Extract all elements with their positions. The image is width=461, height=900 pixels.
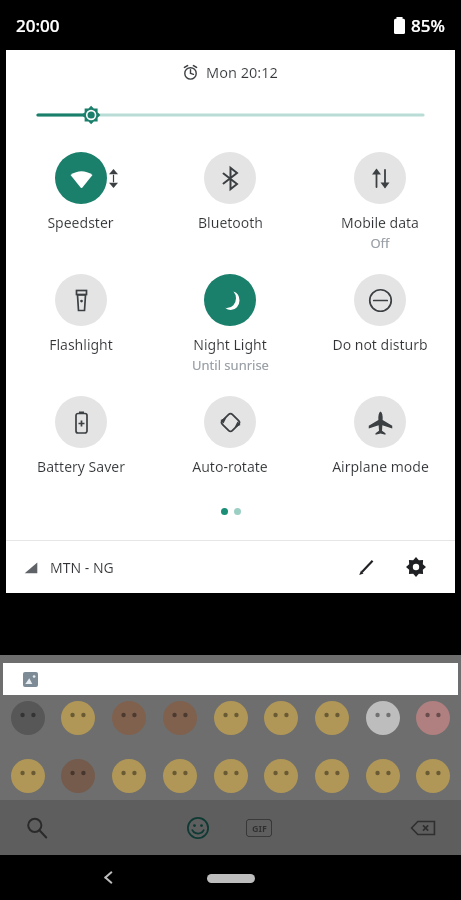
staticText: Until sunrise: [192, 356, 269, 374]
staticText: MTN - NG: [50, 558, 114, 577]
staticText: 85%: [411, 14, 445, 37]
button[interactable]: Battery Saver: [6, 396, 155, 476]
staticText: Auto-rotate: [192, 457, 268, 476]
button[interactable]: Mobile data: [305, 152, 455, 252]
staticText: Speedster: [47, 213, 114, 232]
button[interactable]: Insert image: [23, 672, 38, 687]
staticText: Off: [370, 234, 390, 252]
staticText: Flashlight: [49, 335, 113, 354]
staticText: Mon 20:12: [206, 62, 278, 82]
staticText: Do not disturb: [332, 335, 428, 354]
staticText: Airplane mode: [332, 457, 429, 476]
staticText: GIF: [252, 822, 267, 834]
button[interactable]: Emoji: [179, 809, 217, 847]
staticText: Bluetooth: [198, 213, 263, 232]
button[interactable]: Back: [88, 855, 128, 900]
staticText: Night Light: [193, 335, 267, 354]
button[interactable]: Backspace: [403, 808, 443, 848]
button[interactable]: Do not disturb: [305, 274, 455, 354]
button[interactable]: Bluetooth: [155, 152, 305, 232]
button[interactable]: Airplane mode: [305, 396, 455, 476]
button[interactable]: Speedster: [6, 152, 155, 232]
button[interactable]: Search emoji: [18, 809, 56, 847]
button[interactable]: Home: [201, 867, 261, 889]
button[interactable]: Brightness: [6, 94, 455, 136]
button[interactable]: Edit tiles: [345, 546, 387, 588]
button[interactable]: Auto-rotate: [155, 396, 305, 476]
button[interactable]: Flashlight: [6, 274, 155, 354]
button[interactable]: Night Light: [155, 274, 305, 374]
button[interactable]: Mon 20:12: [177, 60, 284, 84]
button[interactable]: GIF: [239, 808, 279, 848]
staticText: 20:00: [16, 14, 60, 37]
button[interactable]: Settings: [395, 546, 437, 588]
button[interactable]: MTN - NG: [24, 552, 114, 583]
staticText: Battery Saver: [37, 457, 125, 476]
staticText: Mobile data: [341, 213, 419, 232]
